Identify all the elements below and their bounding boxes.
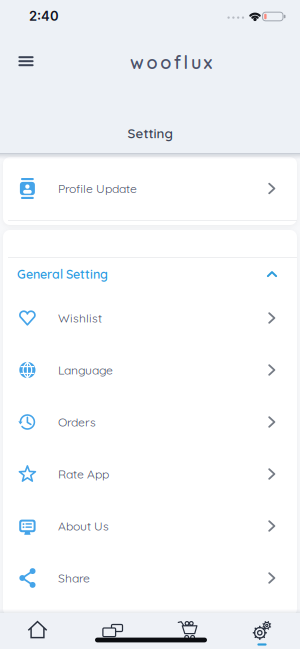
staticText: o <box>147 51 158 73</box>
button[interactable]: Profile Update <box>3 157 297 220</box>
button[interactable]: Wishlist <box>3 292 297 344</box>
button[interactable]: Language <box>3 344 297 396</box>
staticText: Rate App <box>58 466 109 482</box>
staticText: o <box>160 51 171 73</box>
button[interactable]: Rate App <box>3 448 297 500</box>
button[interactable]: Orders <box>3 396 297 448</box>
staticText: Orders <box>58 414 96 430</box>
button[interactable]: About Us <box>3 500 297 552</box>
button[interactable]: Share <box>3 552 297 604</box>
staticText: Profile Update <box>58 181 137 196</box>
button[interactable]: Home <box>0 613 75 649</box>
button[interactable]: General Setting <box>3 258 297 292</box>
button[interactable]: Menu <box>18 56 34 66</box>
staticText: General Setting <box>17 266 108 282</box>
staticText: 2:40 <box>29 8 59 24</box>
staticText: l <box>183 51 188 73</box>
button[interactable]: Settings <box>225 613 300 649</box>
staticText: f <box>174 51 181 73</box>
button[interactable]: Categories <box>75 613 150 649</box>
staticText: About Us <box>58 518 109 534</box>
staticText: x <box>204 51 213 73</box>
staticText: u <box>191 51 201 73</box>
staticText: w <box>130 51 144 73</box>
staticText: Language <box>58 362 113 378</box>
staticText: Setting <box>127 125 172 142</box>
staticText: Wishlist <box>58 310 102 326</box>
button[interactable]: Cart <box>150 613 225 649</box>
staticText: Share <box>58 570 90 586</box>
